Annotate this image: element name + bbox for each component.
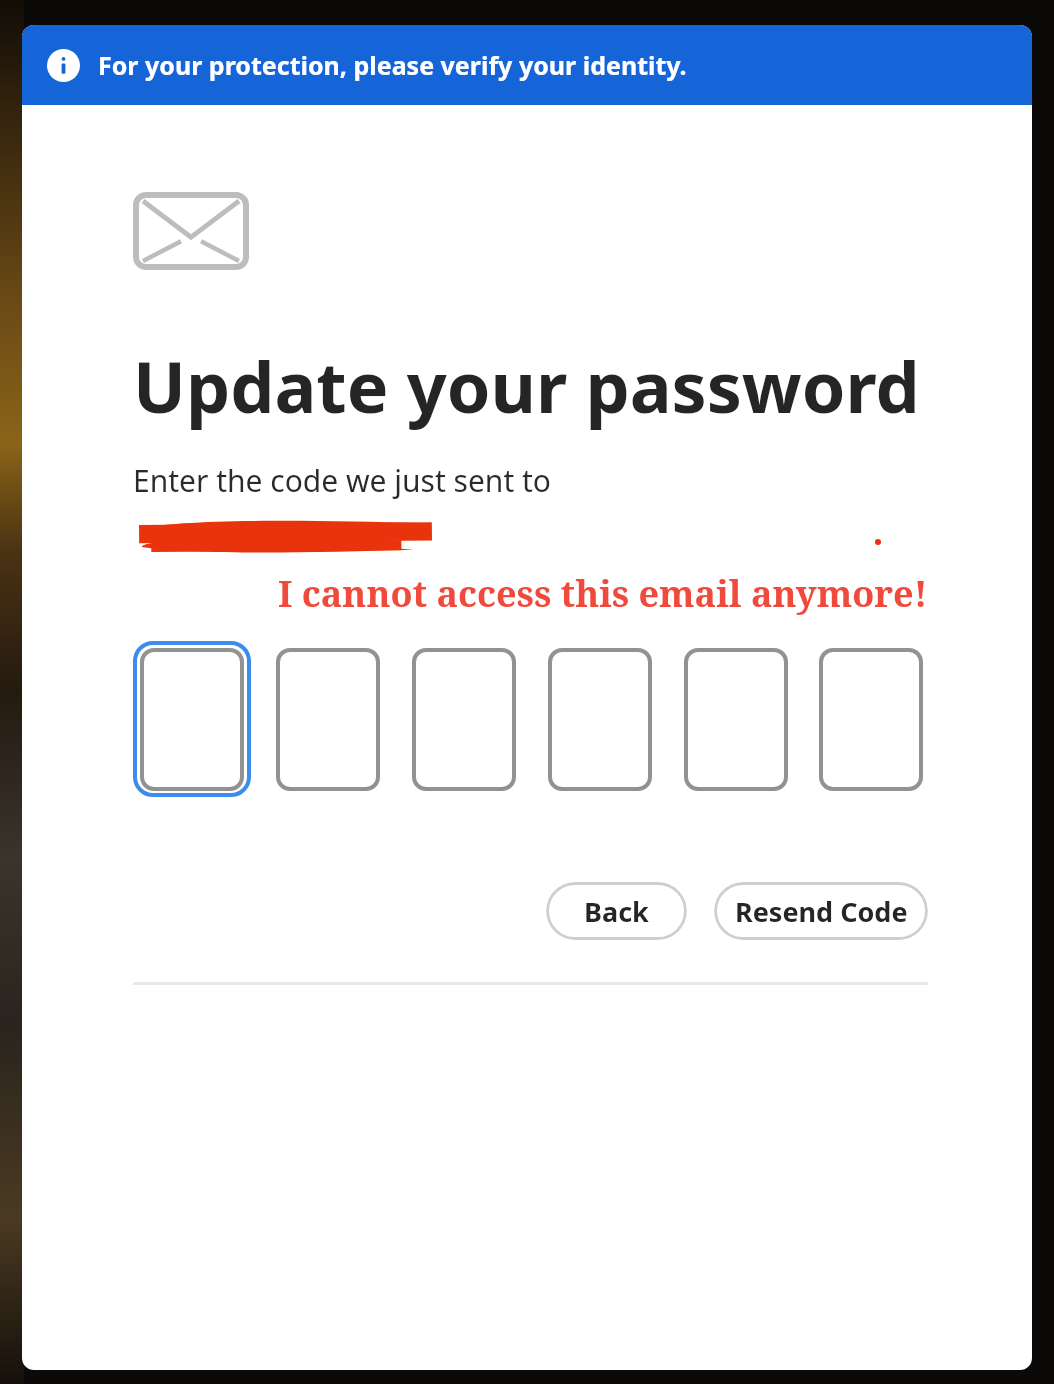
staticText: Enter the code we just sent to (133, 460, 551, 501)
other: Email (133, 192, 249, 270)
button[interactable]: Code digit 6 (813, 641, 928, 797)
button[interactable]: Back (546, 882, 687, 940)
staticText: Update your password (133, 338, 920, 433)
button[interactable]: Code digit 2 (269, 641, 387, 797)
button[interactable]: Code digit 1 (133, 641, 251, 797)
button[interactable]: Code digit 3 (405, 641, 523, 797)
staticText: For your protection, please verify your … (98, 48, 687, 82)
button[interactable]: Resend Code (714, 882, 928, 940)
staticText: I cannot access this email anymore! (278, 569, 928, 618)
button[interactable]: Information (22, 25, 1032, 105)
button[interactable]: Code digit 5 (677, 641, 795, 797)
other: Information (47, 49, 80, 82)
button[interactable]: Code digit 4 (541, 641, 659, 797)
staticText: Back (584, 893, 649, 930)
staticText: Resend Code (735, 893, 908, 930)
